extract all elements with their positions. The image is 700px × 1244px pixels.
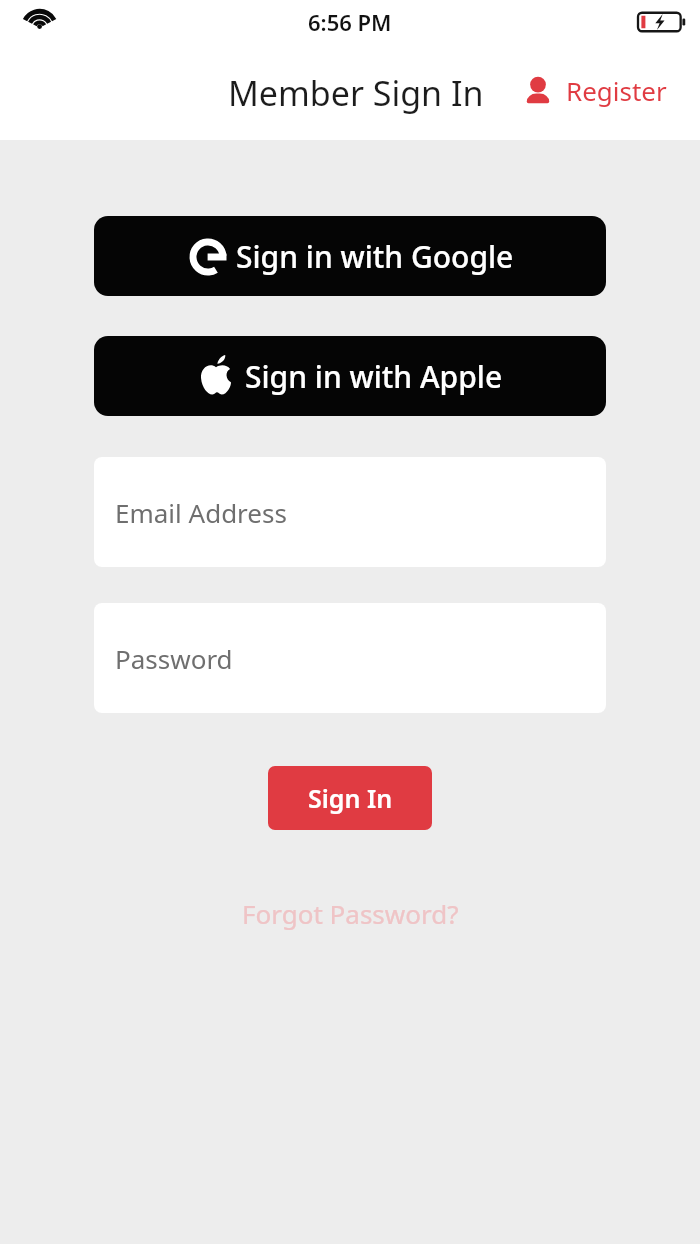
staticText: Sign In [308,781,393,815]
button[interactable]: Register [518,70,671,111]
button[interactable]: Sign in with Google [94,216,606,296]
other: Battery charging [638,8,690,36]
staticText: Password [115,641,233,676]
other: Wi-Fi [22,7,62,33]
staticText: Sign in with Apple [245,356,503,397]
staticText: Member Sign In [228,70,484,116]
button[interactable]: Sign In [268,766,432,830]
staticText: Forgot Password? [242,896,459,931]
button[interactable]: Password [94,603,606,713]
staticText: Sign in with Google [236,236,514,277]
button[interactable]: Sign in with Apple [94,336,606,416]
staticText: Register [566,73,667,108]
staticText: Email Address [115,495,287,530]
staticText: 6:56 PM [308,7,392,37]
button[interactable]: Email Address [94,457,606,567]
button[interactable]: Forgot Password? [230,890,471,937]
